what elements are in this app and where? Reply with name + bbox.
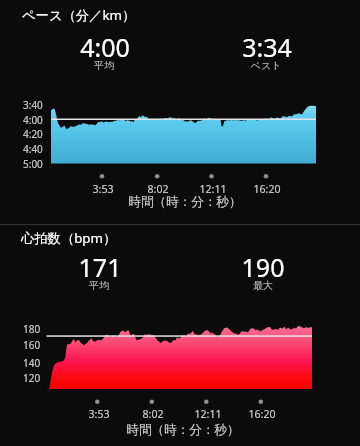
button[interactable]: ペース（分／km）: [0, 0, 360, 224]
staticText: 心拍数（bpm）: [21, 229, 117, 247]
staticText: 4:20: [23, 127, 43, 141]
staticText: 3:53: [73, 182, 133, 196]
staticText: 171: [30, 250, 170, 284]
staticText: 4:00: [35, 30, 175, 64]
staticText: 16:20: [232, 407, 292, 421]
staticText: 12:11: [178, 407, 238, 421]
staticText: 16:20: [237, 182, 297, 196]
staticText: 最大: [193, 279, 333, 292]
staticText: 8:02: [128, 182, 188, 196]
staticText: 時間（時：分：秒）: [75, 194, 295, 210]
staticText: 190: [193, 250, 333, 284]
staticText: 180: [23, 322, 41, 336]
staticText: 平均: [34, 59, 174, 72]
staticText: 3:40: [23, 98, 43, 112]
staticText: 時間（時：分：秒）: [73, 422, 293, 438]
staticText: 8:02: [123, 407, 183, 421]
staticText: ベスト: [196, 59, 336, 72]
staticText: 3:34: [197, 30, 337, 64]
staticText: 5:00: [23, 157, 43, 171]
staticText: 160: [23, 338, 41, 352]
staticText: ペース（分／km）: [22, 6, 136, 24]
staticText: 140: [23, 356, 41, 370]
staticText: 3:53: [69, 407, 129, 421]
staticText: 120: [23, 371, 41, 385]
staticText: 4:40: [23, 142, 43, 156]
staticText: 平均: [29, 279, 169, 292]
staticText: 12:11: [183, 182, 243, 196]
staticText: 4:00: [23, 113, 43, 127]
button[interactable]: 心拍数（bpm）: [0, 225, 360, 446]
